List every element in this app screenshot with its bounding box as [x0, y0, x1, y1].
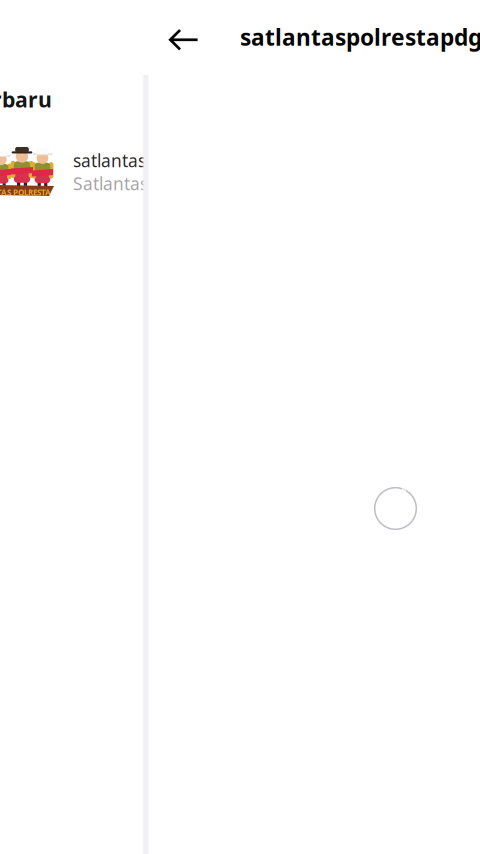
staticText: satlantaspolrestapdg [240, 22, 480, 52]
staticText: TAS POLRESTA [0, 187, 51, 198]
button[interactable]: Back [161, 17, 209, 61]
staticText: satlantas [73, 149, 146, 172]
staticText: Satlantas [73, 172, 148, 195]
staticText: Terbaru [0, 85, 52, 113]
button[interactable]: TAS POLRESTA [0, 135, 147, 207]
